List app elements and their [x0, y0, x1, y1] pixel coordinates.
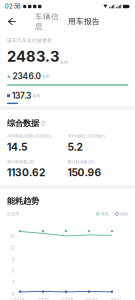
staticText: 2346.0	[13, 71, 41, 81]
staticText: 5.2	[67, 141, 82, 153]
staticText: i	[43, 121, 44, 125]
staticText: km	[43, 73, 50, 79]
staticText: 12	[10, 245, 15, 251]
staticText: 08.11	[110, 298, 121, 300]
staticText: km	[60, 59, 67, 65]
staticText: 近五周	[7, 211, 19, 217]
staticText: 07.28	[61, 298, 73, 300]
staticText: km	[33, 93, 40, 99]
staticText: 150.96	[67, 166, 101, 179]
staticText: 9	[12, 257, 15, 262]
staticText: 油耗	[120, 211, 128, 217]
staticText: 14.5	[7, 141, 27, 153]
staticText: 3	[12, 280, 15, 285]
staticText: 6	[12, 268, 15, 274]
staticText: 137.3	[12, 91, 31, 101]
staticText: 累计耗油量(升)	[67, 159, 95, 164]
staticText: 02:56	[5, 3, 21, 10]
staticText: 15	[10, 234, 15, 239]
staticText: 平均油耗(L/100km)	[67, 133, 105, 139]
button[interactable]: 用车报告	[66, 13, 102, 30]
staticText: 能耗趋势	[7, 196, 39, 206]
staticText: 综合数据	[7, 118, 39, 128]
staticText: 平均电耗(kWh/100km)	[7, 133, 52, 139]
staticText: 2483.3	[7, 47, 59, 65]
staticText: 累计耗电量(度)	[7, 159, 35, 164]
staticText: 用车报告	[68, 17, 100, 26]
button[interactable]: Back	[2, 13, 22, 30]
staticText: 车辆信息	[35, 12, 59, 31]
staticText: 电耗	[101, 211, 109, 217]
staticText: 0	[12, 291, 15, 297]
staticText: 07.14	[14, 298, 25, 300]
staticText: 1130.62	[7, 166, 45, 179]
staticText: 08.04	[85, 298, 98, 300]
button[interactable]: 车辆信息	[33, 13, 61, 30]
staticText: 07.21	[38, 298, 49, 300]
staticText: 该车汽车总行驶里程	[7, 37, 52, 43]
